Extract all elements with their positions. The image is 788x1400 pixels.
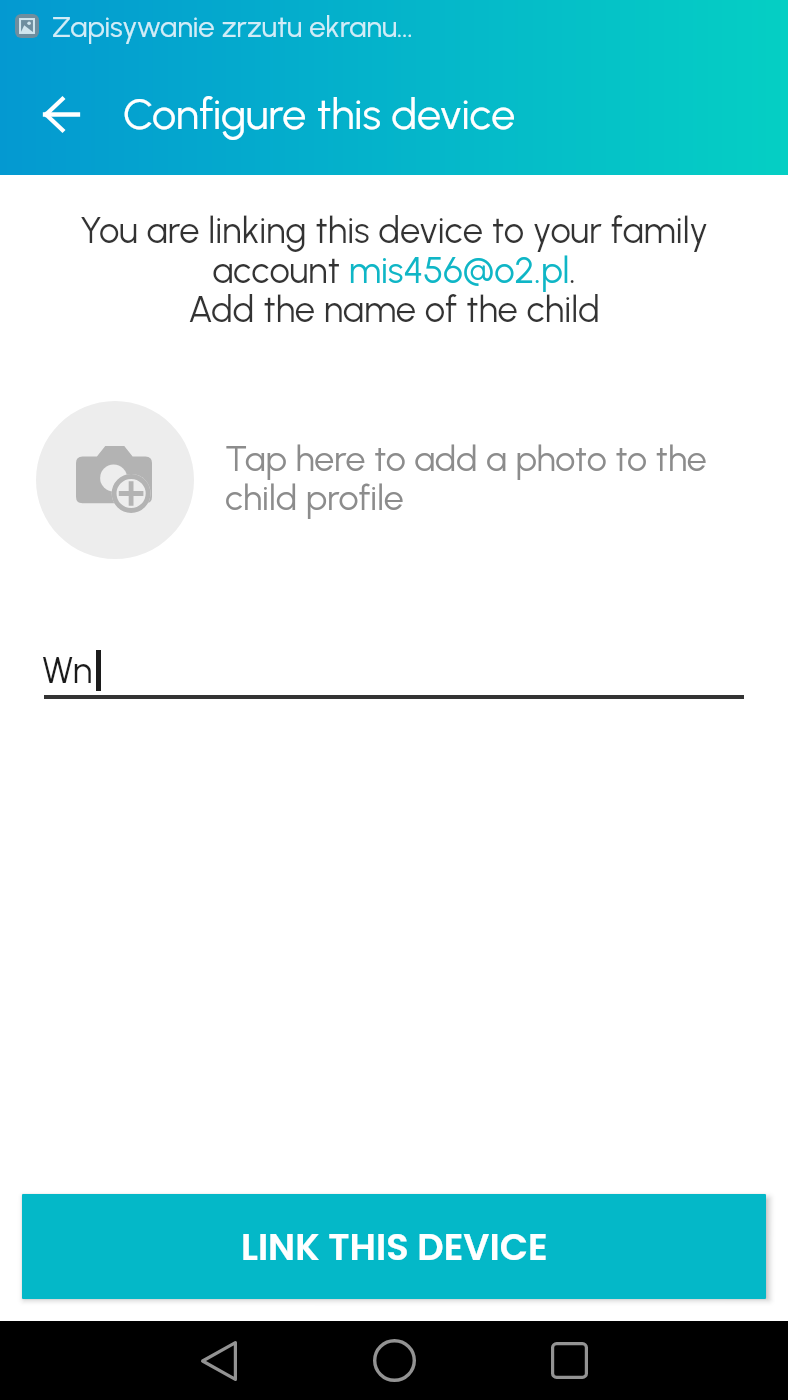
- staticText: Zapisywanie zrzutu ekranu...: [52, 9, 413, 44]
- staticText: LINK THIS DEVICE: [241, 1221, 548, 1273]
- button[interactable]: Home: [354, 1321, 434, 1400]
- other: Add a photo: [36, 401, 194, 559]
- button[interactable]: LINK THIS DEVICE: [22, 1194, 766, 1299]
- staticText: Wn: [42, 648, 93, 692]
- button[interactable]: Add a photo: [36, 401, 736, 559]
- staticText: Configure this device: [123, 88, 516, 140]
- staticText: Tap here to add a photo to the child pro…: [225, 437, 707, 518]
- staticText: You are linking this device to your fami…: [0, 209, 788, 331]
- button[interactable]: Back: [18, 71, 104, 157]
- button[interactable]: Wn: [44, 635, 744, 699]
- button[interactable]: Back: [179, 1321, 259, 1400]
- button[interactable]: Recent apps: [529, 1321, 609, 1400]
